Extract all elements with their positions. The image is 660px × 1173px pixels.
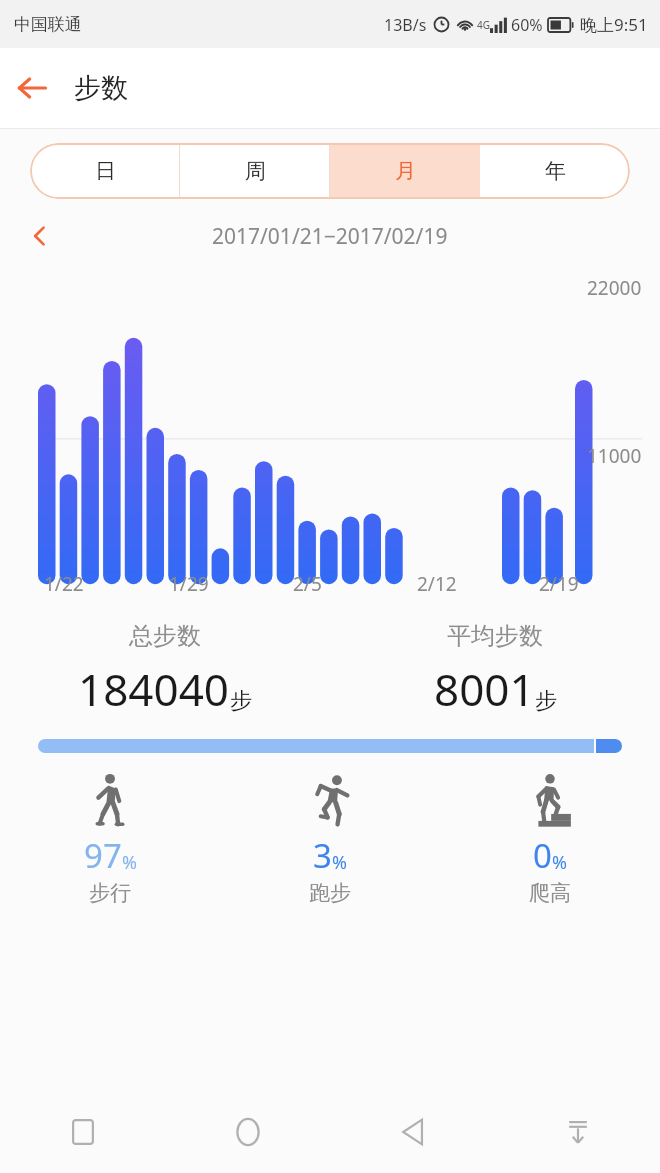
button[interactable]: Recents — [0, 1090, 165, 1173]
staticText: 周 — [245, 158, 266, 184]
staticText: 步 — [535, 687, 557, 715]
staticText: % — [332, 850, 347, 875]
staticText: 2017/01/21−2017/02/19 — [212, 222, 448, 251]
button[interactable]: Back — [0, 56, 64, 120]
staticText: 步行 — [89, 880, 131, 906]
staticText: 步数 — [74, 71, 128, 105]
staticText: % — [552, 850, 567, 875]
staticText: 爬高 — [529, 880, 571, 906]
button[interactable]: 0 — [440, 771, 660, 906]
staticText: 22000 — [587, 275, 642, 301]
staticText: 1/22 — [44, 571, 84, 597]
button[interactable]: 周 — [180, 143, 330, 199]
button[interactable]: 月 — [330, 143, 480, 199]
staticText: 0 — [533, 833, 552, 878]
staticText: 8001 — [434, 659, 535, 719]
staticText: 13B/s — [384, 14, 427, 36]
staticText: 年 — [545, 158, 566, 184]
staticText: 97 — [84, 833, 122, 878]
staticText: 4G — [477, 18, 490, 32]
staticText: 1/29 — [169, 571, 209, 597]
staticText: 步 — [230, 687, 252, 715]
button[interactable]: 年 — [480, 143, 630, 199]
staticText: 2/12 — [417, 571, 457, 597]
staticText: 2/19 — [539, 571, 579, 597]
button[interactable]: 日 — [30, 143, 180, 199]
staticText: 11000 — [587, 443, 642, 469]
staticText: % — [122, 850, 137, 875]
staticText: 总步数 — [129, 621, 201, 651]
staticText: 日 — [95, 158, 116, 184]
staticText: 60% — [511, 14, 543, 36]
button[interactable]: 97 — [0, 771, 220, 906]
staticText: 晚上9:51 — [580, 13, 648, 36]
staticText: 2/5 — [293, 571, 322, 597]
staticText: 中国联通 — [14, 14, 82, 35]
button[interactable]: Previous period — [20, 216, 60, 256]
staticText: 3 — [313, 833, 332, 878]
staticText: 平均步数 — [447, 621, 543, 651]
staticText: 月 — [395, 158, 416, 184]
button[interactable]: Hide navigation bar — [495, 1090, 660, 1173]
button[interactable]: Home — [165, 1090, 330, 1173]
staticText: 184040 — [78, 659, 230, 719]
button[interactable]: Back — [330, 1090, 495, 1173]
staticText: 跑步 — [309, 880, 351, 906]
button[interactable]: 3 — [220, 771, 440, 906]
